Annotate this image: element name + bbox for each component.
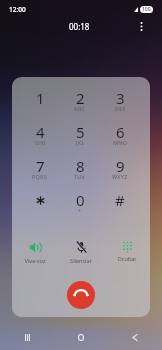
staticText: WXYZ (112, 173, 128, 180)
staticText: Silenciar (70, 257, 92, 264)
staticText: 12:00 (9, 5, 26, 14)
button[interactable]: 0 (60, 185, 100, 219)
button[interactable]: Viva-voz (12, 241, 58, 264)
staticText: 5 (76, 122, 85, 142)
staticText: 4 (36, 122, 45, 142)
staticText: Ocultar (117, 255, 137, 262)
staticText: 7 (36, 156, 45, 176)
button[interactable]: 3 (100, 83, 140, 117)
button[interactable]: Recent apps (0, 325, 54, 350)
staticText: PQRS (32, 173, 48, 180)
button[interactable]: More options (132, 17, 151, 36)
staticText: 8 (76, 156, 85, 176)
staticText: JKL (76, 139, 85, 146)
staticText: + (78, 207, 82, 214)
button[interactable]: Back (108, 325, 162, 350)
staticText: DEF (115, 105, 126, 112)
staticText: 3 (116, 88, 125, 108)
button[interactable]: 1 (20, 83, 60, 117)
button[interactable]: 8 (60, 151, 100, 185)
staticText: 1 (36, 88, 45, 108)
staticText: MNO (113, 139, 128, 146)
button[interactable]: 6 (100, 117, 140, 151)
staticText: 00:18 (69, 21, 90, 32)
button[interactable]: 2 (60, 83, 100, 117)
staticText: GHI (35, 139, 46, 146)
staticText: # (115, 190, 125, 210)
staticText: 100 (142, 6, 151, 13)
button[interactable]: Ocultar (104, 241, 150, 262)
button[interactable]: Silenciar (58, 241, 104, 264)
staticText: ABC (74, 105, 86, 112)
button[interactable]: # (100, 185, 140, 219)
button[interactable]: Home (54, 325, 108, 350)
button[interactable]: End call (67, 281, 95, 309)
button[interactable]: 7 (20, 151, 60, 185)
button[interactable]: 4 (20, 117, 60, 151)
button[interactable]: Star (20, 185, 60, 219)
staticText: 9 (116, 156, 125, 176)
button[interactable]: 9 (100, 151, 140, 185)
staticText: 6 (116, 122, 125, 142)
staticText: 0 (76, 190, 85, 210)
staticText: TUV (74, 173, 86, 180)
staticText: 2 (76, 88, 85, 108)
staticText: Viva-voz (24, 257, 46, 264)
button[interactable]: 5 (60, 117, 100, 151)
